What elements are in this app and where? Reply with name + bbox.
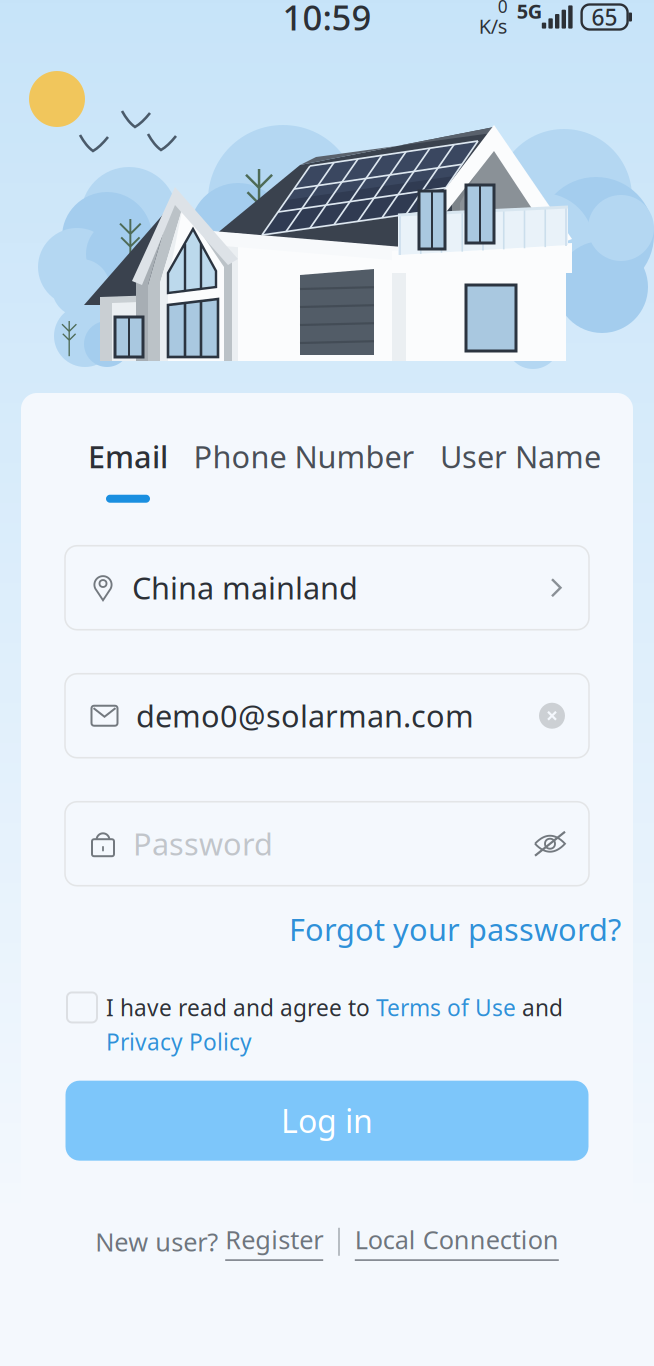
button[interactable]: Clear text: [539, 703, 565, 729]
staticText: Log in: [281, 1099, 373, 1142]
staticText: Register: [225, 1223, 323, 1256]
staticText: Password: [133, 823, 273, 864]
button[interactable]: Privacy Policy: [106, 1027, 252, 1057]
button[interactable]: Local Connection: [355, 1223, 559, 1261]
staticText: Phone Number: [193, 436, 414, 477]
button[interactable]: Phone Number: [193, 436, 414, 503]
staticText: 0: [498, 0, 508, 18]
button[interactable]: Log in: [65, 1081, 588, 1161]
button[interactable]: Show password: [533, 831, 567, 857]
staticText: demo0@solarman.com: [136, 695, 474, 736]
staticText: Local Connection: [355, 1223, 559, 1256]
button[interactable]: Agree to terms: [67, 992, 97, 1022]
staticText: K/s: [479, 13, 508, 39]
staticText: Email: [88, 436, 168, 477]
staticText: Forgot your password?: [289, 909, 621, 949]
staticText: User Name: [440, 436, 601, 477]
staticText: and: [516, 992, 563, 1022]
staticText: Privacy Policy: [106, 1027, 252, 1057]
staticText: Terms of Use: [376, 992, 516, 1022]
staticText: New user?: [95, 1225, 225, 1259]
button[interactable]: China mainland: [65, 546, 589, 630]
button[interactable]: Register: [225, 1223, 323, 1261]
staticText: 65: [592, 2, 618, 32]
button[interactable]: Terms of Use: [376, 992, 516, 1022]
button[interactable]: Email: [88, 436, 168, 503]
staticText: 10:59: [282, 0, 371, 40]
staticText: 5G: [517, 0, 542, 24]
button[interactable]: Forgot your password?: [289, 909, 621, 949]
staticText: China mainland: [132, 567, 358, 608]
staticText: I have read and agree to: [106, 992, 376, 1022]
button[interactable]: User Name: [440, 436, 601, 503]
